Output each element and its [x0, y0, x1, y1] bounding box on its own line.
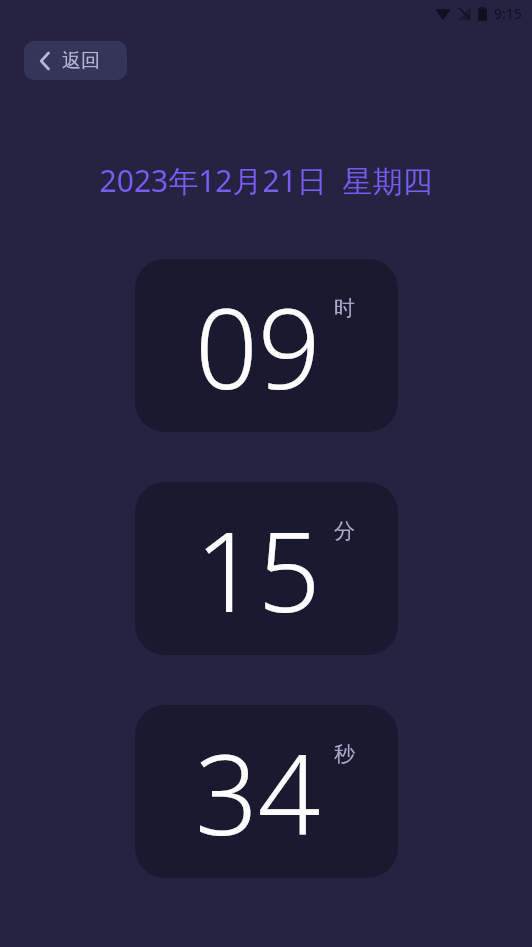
staticText: 2023年12月21日 星期四	[0, 160, 532, 201]
button[interactable]: 15	[135, 482, 398, 655]
button[interactable]: 09	[135, 259, 398, 432]
staticText: 15	[195, 494, 321, 644]
staticText: 09	[195, 271, 321, 421]
staticText: 秒	[334, 741, 355, 767]
button[interactable]: 34	[135, 705, 398, 878]
staticText: 返回	[62, 49, 100, 73]
staticText: 分	[334, 518, 355, 544]
button[interactable]: 返回	[24, 41, 127, 80]
staticText: 9:15	[494, 4, 522, 23]
staticText: 时	[334, 295, 355, 321]
staticText: 34	[195, 717, 321, 867]
